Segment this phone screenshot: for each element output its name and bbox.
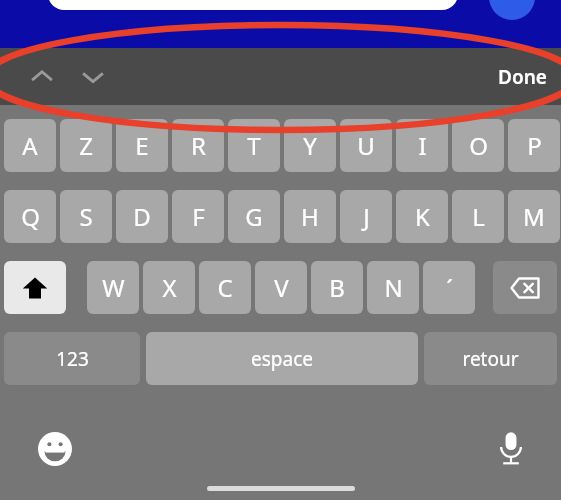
staticText: Z xyxy=(79,129,93,162)
button[interactable]: E xyxy=(116,119,168,172)
button[interactable]: K xyxy=(396,190,448,243)
button[interactable]: R xyxy=(172,119,224,172)
button[interactable]: I xyxy=(396,119,448,172)
button[interactable]: U xyxy=(340,119,392,172)
staticText: F xyxy=(192,200,205,233)
staticText: V xyxy=(274,271,289,304)
staticText: ´ xyxy=(446,271,453,304)
staticText: L xyxy=(472,200,485,233)
button[interactable]: Emoji keyboard xyxy=(34,428,76,470)
staticText: D xyxy=(133,200,151,233)
button[interactable]: L xyxy=(452,190,504,243)
button[interactable]: S xyxy=(60,190,112,243)
staticText: Y xyxy=(303,129,317,162)
button[interactable]: Y xyxy=(284,119,336,172)
button[interactable]: N xyxy=(367,261,419,314)
staticText: U xyxy=(357,129,375,162)
staticText: W xyxy=(102,271,125,304)
button[interactable]: espace xyxy=(146,332,418,385)
button[interactable]: V xyxy=(255,261,307,314)
button[interactable]: C xyxy=(199,261,251,314)
button[interactable]: Z xyxy=(60,119,112,172)
button[interactable]: P xyxy=(508,119,560,172)
staticText: M xyxy=(523,200,545,233)
button[interactable]: F xyxy=(172,190,224,243)
button[interactable]: A xyxy=(4,119,56,172)
staticText: Done xyxy=(498,64,547,90)
button[interactable]: O xyxy=(452,119,504,172)
button[interactable]: ´ xyxy=(423,261,475,314)
staticText: A xyxy=(22,129,38,162)
button[interactable]: Account xyxy=(489,0,535,20)
staticText: T xyxy=(247,129,261,162)
button[interactable]: 123 xyxy=(4,332,140,385)
button[interactable]: G xyxy=(228,190,280,243)
staticText: O xyxy=(469,129,488,162)
button[interactable]: retour xyxy=(424,332,557,385)
staticText: S xyxy=(79,200,93,233)
staticText: B xyxy=(329,271,345,304)
staticText: K xyxy=(415,200,430,233)
button[interactable]: Q xyxy=(4,190,56,243)
staticText: 123 xyxy=(56,346,89,372)
staticText: G xyxy=(245,200,263,233)
button[interactable]: Previous field xyxy=(22,57,62,97)
staticText: J xyxy=(363,200,370,233)
staticText: N xyxy=(384,271,403,304)
staticText: espace xyxy=(251,346,313,372)
button[interactable]: Voice input xyxy=(489,426,533,470)
button[interactable]: Delete xyxy=(493,261,557,314)
button[interactable]: Shift xyxy=(4,261,66,314)
staticText: H xyxy=(301,200,319,233)
button[interactable] xyxy=(48,0,458,10)
button[interactable]: D xyxy=(116,190,168,243)
staticText: Q xyxy=(21,200,40,233)
staticText: P xyxy=(527,129,542,162)
staticText: I xyxy=(418,129,427,162)
button[interactable]: B xyxy=(311,261,363,314)
staticText: X xyxy=(162,271,177,304)
staticText: R xyxy=(191,129,206,162)
button[interactable]: W xyxy=(87,261,139,314)
button[interactable]: J xyxy=(340,190,392,243)
button[interactable]: M xyxy=(508,190,560,243)
button[interactable]: X xyxy=(143,261,195,314)
button[interactable]: H xyxy=(284,190,336,243)
staticText: E xyxy=(135,129,149,162)
button[interactable]: Next field xyxy=(73,57,113,97)
button[interactable]: Done xyxy=(498,64,547,90)
button[interactable]: T xyxy=(228,119,280,172)
staticText: retour xyxy=(462,346,519,372)
staticText: C xyxy=(217,271,233,304)
